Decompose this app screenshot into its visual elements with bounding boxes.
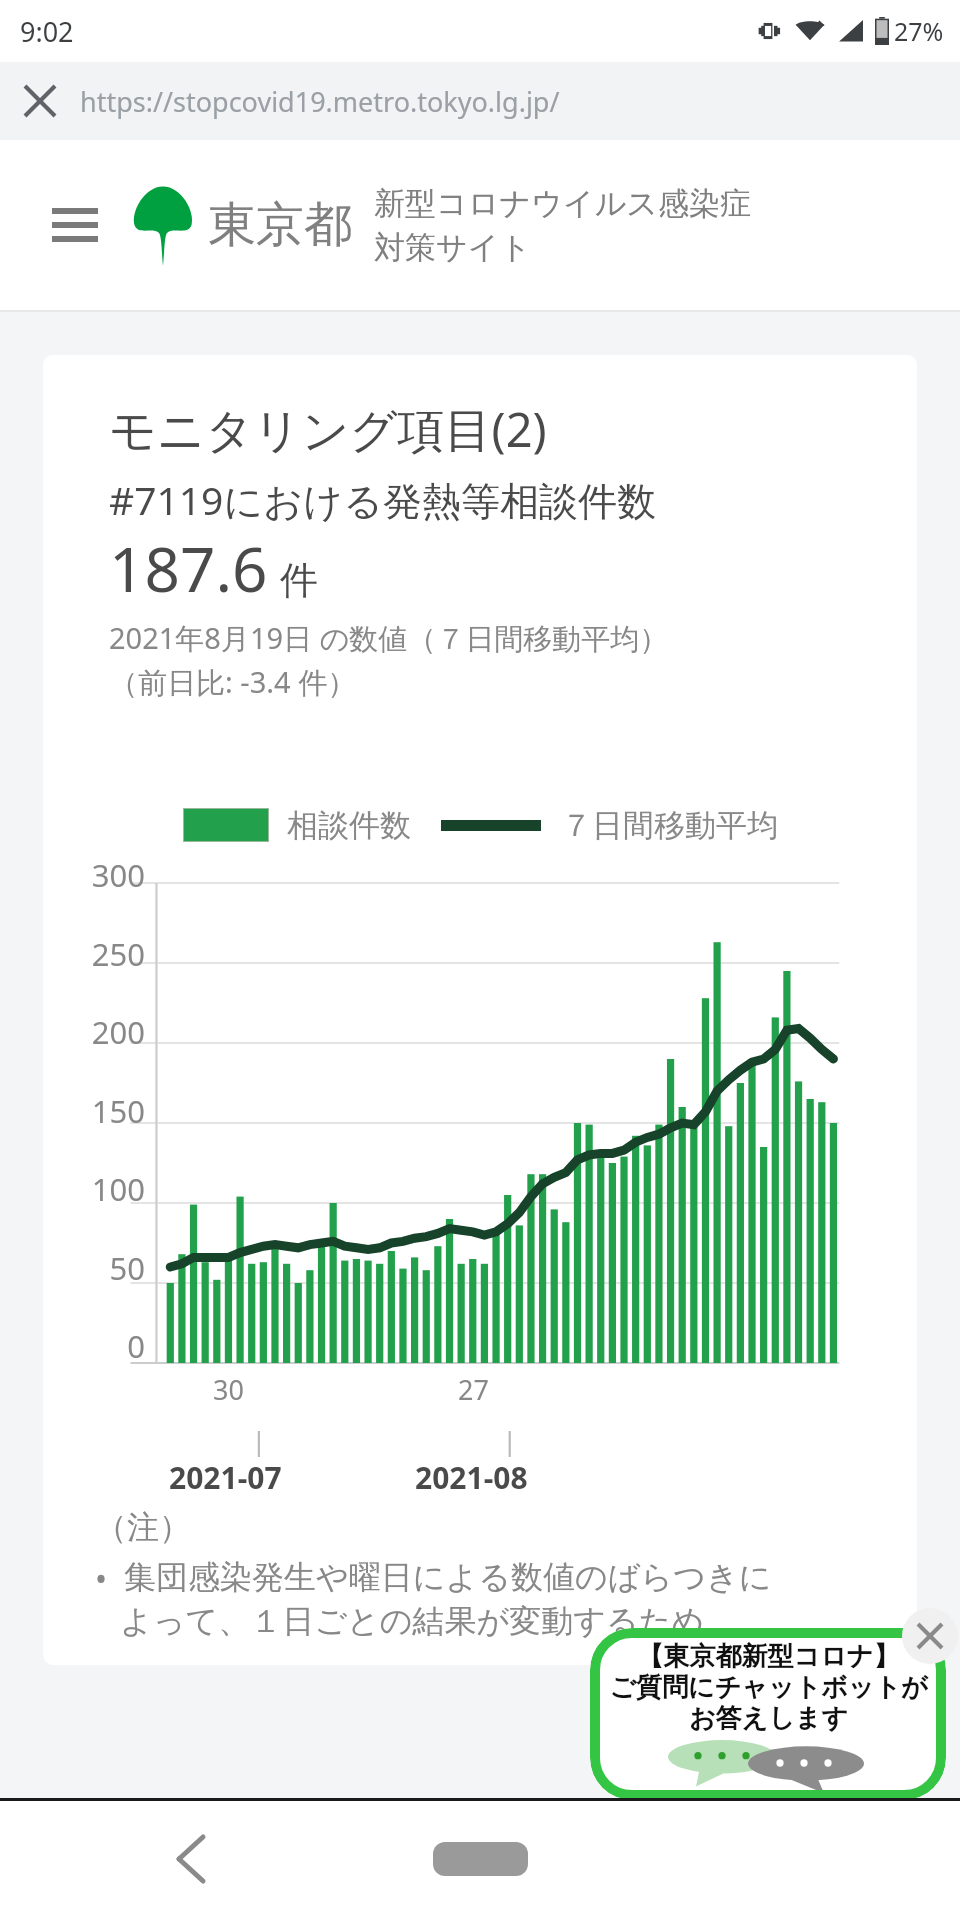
staticText: 相談件数 bbox=[287, 806, 411, 845]
button[interactable]: Home bbox=[433, 1842, 528, 1876]
staticText: 200 bbox=[71, 1011, 145, 1053]
button[interactable]: Back bbox=[150, 1819, 230, 1899]
staticText: • bbox=[95, 1557, 124, 1601]
staticText: （注） bbox=[95, 1507, 191, 1547]
staticText: よって、１日ごとの結果が変動するため、 bbox=[120, 1601, 737, 1641]
staticText: モニタリング項目(2) bbox=[109, 397, 547, 461]
staticText: 50 bbox=[71, 1247, 145, 1289]
staticText: 150 bbox=[71, 1090, 145, 1132]
staticText: 100 bbox=[71, 1168, 145, 1210]
staticText: 250 bbox=[71, 933, 145, 975]
staticText: 2021-08 bbox=[415, 1457, 528, 1498]
staticText: 9:02 bbox=[20, 13, 74, 50]
staticText: #7119における発熱等相談件数 bbox=[109, 473, 657, 526]
staticText: 件 bbox=[280, 556, 318, 604]
staticText: 2021年8月19日 の数値（７日間移動平均） bbox=[109, 618, 669, 658]
staticText: 300 bbox=[71, 854, 145, 896]
staticText: 2021-07 bbox=[169, 1457, 282, 1498]
staticText: 東京都 bbox=[208, 195, 352, 255]
button[interactable]: 【東京都新型コロナ】 ご質問にチャットボットが お答えします bbox=[590, 1628, 946, 1800]
button[interactable]: Close advertisement bbox=[902, 1608, 958, 1664]
button[interactable]: Menu bbox=[42, 192, 108, 258]
staticText: 27% bbox=[894, 14, 944, 48]
staticText: 30 bbox=[213, 1371, 244, 1408]
staticText: 187.6 bbox=[109, 526, 268, 610]
staticText: 0 bbox=[71, 1325, 145, 1367]
staticText: https://stopcovid19.metro.tokyo.lg.jp/ bbox=[80, 83, 560, 120]
staticText: 集団感染発生や曜日による数値のばらつきに bbox=[124, 1557, 772, 1597]
staticText: 27 bbox=[458, 1371, 489, 1408]
staticText: 新型コロナウイルス感染症 対策サイト bbox=[374, 184, 752, 267]
staticText: ７日間移動平均 bbox=[561, 806, 778, 845]
staticText: 【東京都新型コロナ】 ご質問にチャットボットが お答えします bbox=[609, 1640, 928, 1735]
button[interactable]: Close bbox=[0, 62, 80, 140]
staticText: （前日比: -3.4 件） bbox=[109, 662, 357, 702]
